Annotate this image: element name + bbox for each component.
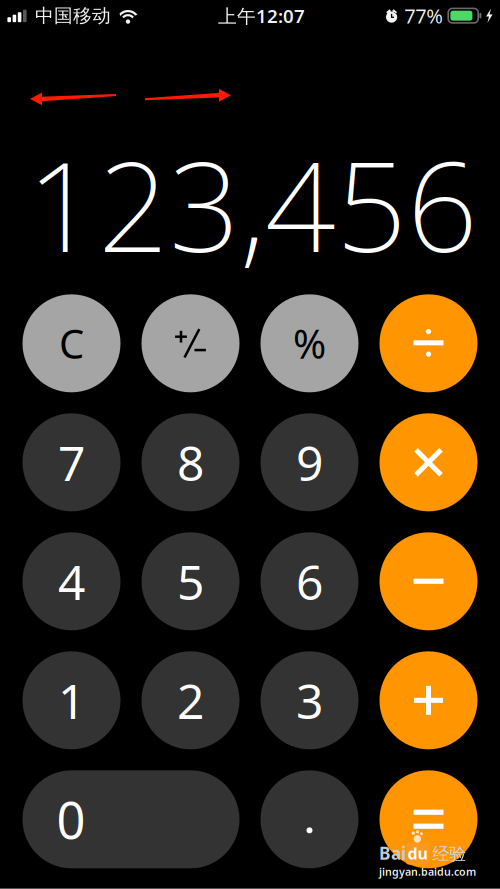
button[interactable] bbox=[141, 294, 239, 392]
button[interactable]: 0 bbox=[22, 770, 239, 868]
button[interactable] bbox=[379, 294, 477, 392]
button[interactable]: 6 bbox=[260, 532, 358, 630]
button[interactable]: 7 bbox=[22, 413, 120, 511]
staticText: 2 bbox=[177, 668, 204, 732]
button[interactable] bbox=[379, 770, 477, 868]
button[interactable] bbox=[379, 651, 477, 749]
staticText: 6 bbox=[296, 549, 323, 613]
button[interactable] bbox=[379, 532, 477, 630]
button[interactable]: C bbox=[22, 294, 120, 392]
staticText: 0 bbox=[56, 786, 85, 853]
staticText: 7 bbox=[58, 430, 85, 494]
button[interactable]: % bbox=[260, 294, 358, 392]
button[interactable]: 9 bbox=[260, 413, 358, 511]
staticText: C bbox=[59, 317, 84, 370]
staticText: 5 bbox=[177, 549, 204, 613]
staticText: 9 bbox=[296, 430, 323, 494]
staticText: % bbox=[293, 317, 326, 370]
button[interactable]: 1 bbox=[22, 651, 120, 749]
staticText: 77% bbox=[404, 2, 443, 29]
button[interactable] bbox=[260, 770, 358, 868]
staticText: 3 bbox=[296, 668, 323, 732]
staticText: 123,456 bbox=[27, 122, 478, 286]
staticText: 4 bbox=[58, 549, 85, 613]
button[interactable]: 3 bbox=[260, 651, 358, 749]
staticText: 中国移动 bbox=[35, 4, 111, 27]
staticText: 经验 bbox=[432, 843, 466, 864]
button[interactable]: 8 bbox=[141, 413, 239, 511]
button[interactable]: 4 bbox=[22, 532, 120, 630]
staticText: jingyan.baidu.com bbox=[379, 864, 476, 879]
button[interactable]: 2 bbox=[141, 651, 239, 749]
button[interactable] bbox=[379, 413, 477, 511]
button[interactable]: 5 bbox=[141, 532, 239, 630]
staticText: 8 bbox=[177, 430, 204, 494]
staticText: Bai bbox=[379, 841, 406, 864]
staticText: du bbox=[407, 843, 427, 864]
staticText: 1 bbox=[58, 668, 85, 732]
staticText: 上午12:07 bbox=[218, 3, 305, 28]
